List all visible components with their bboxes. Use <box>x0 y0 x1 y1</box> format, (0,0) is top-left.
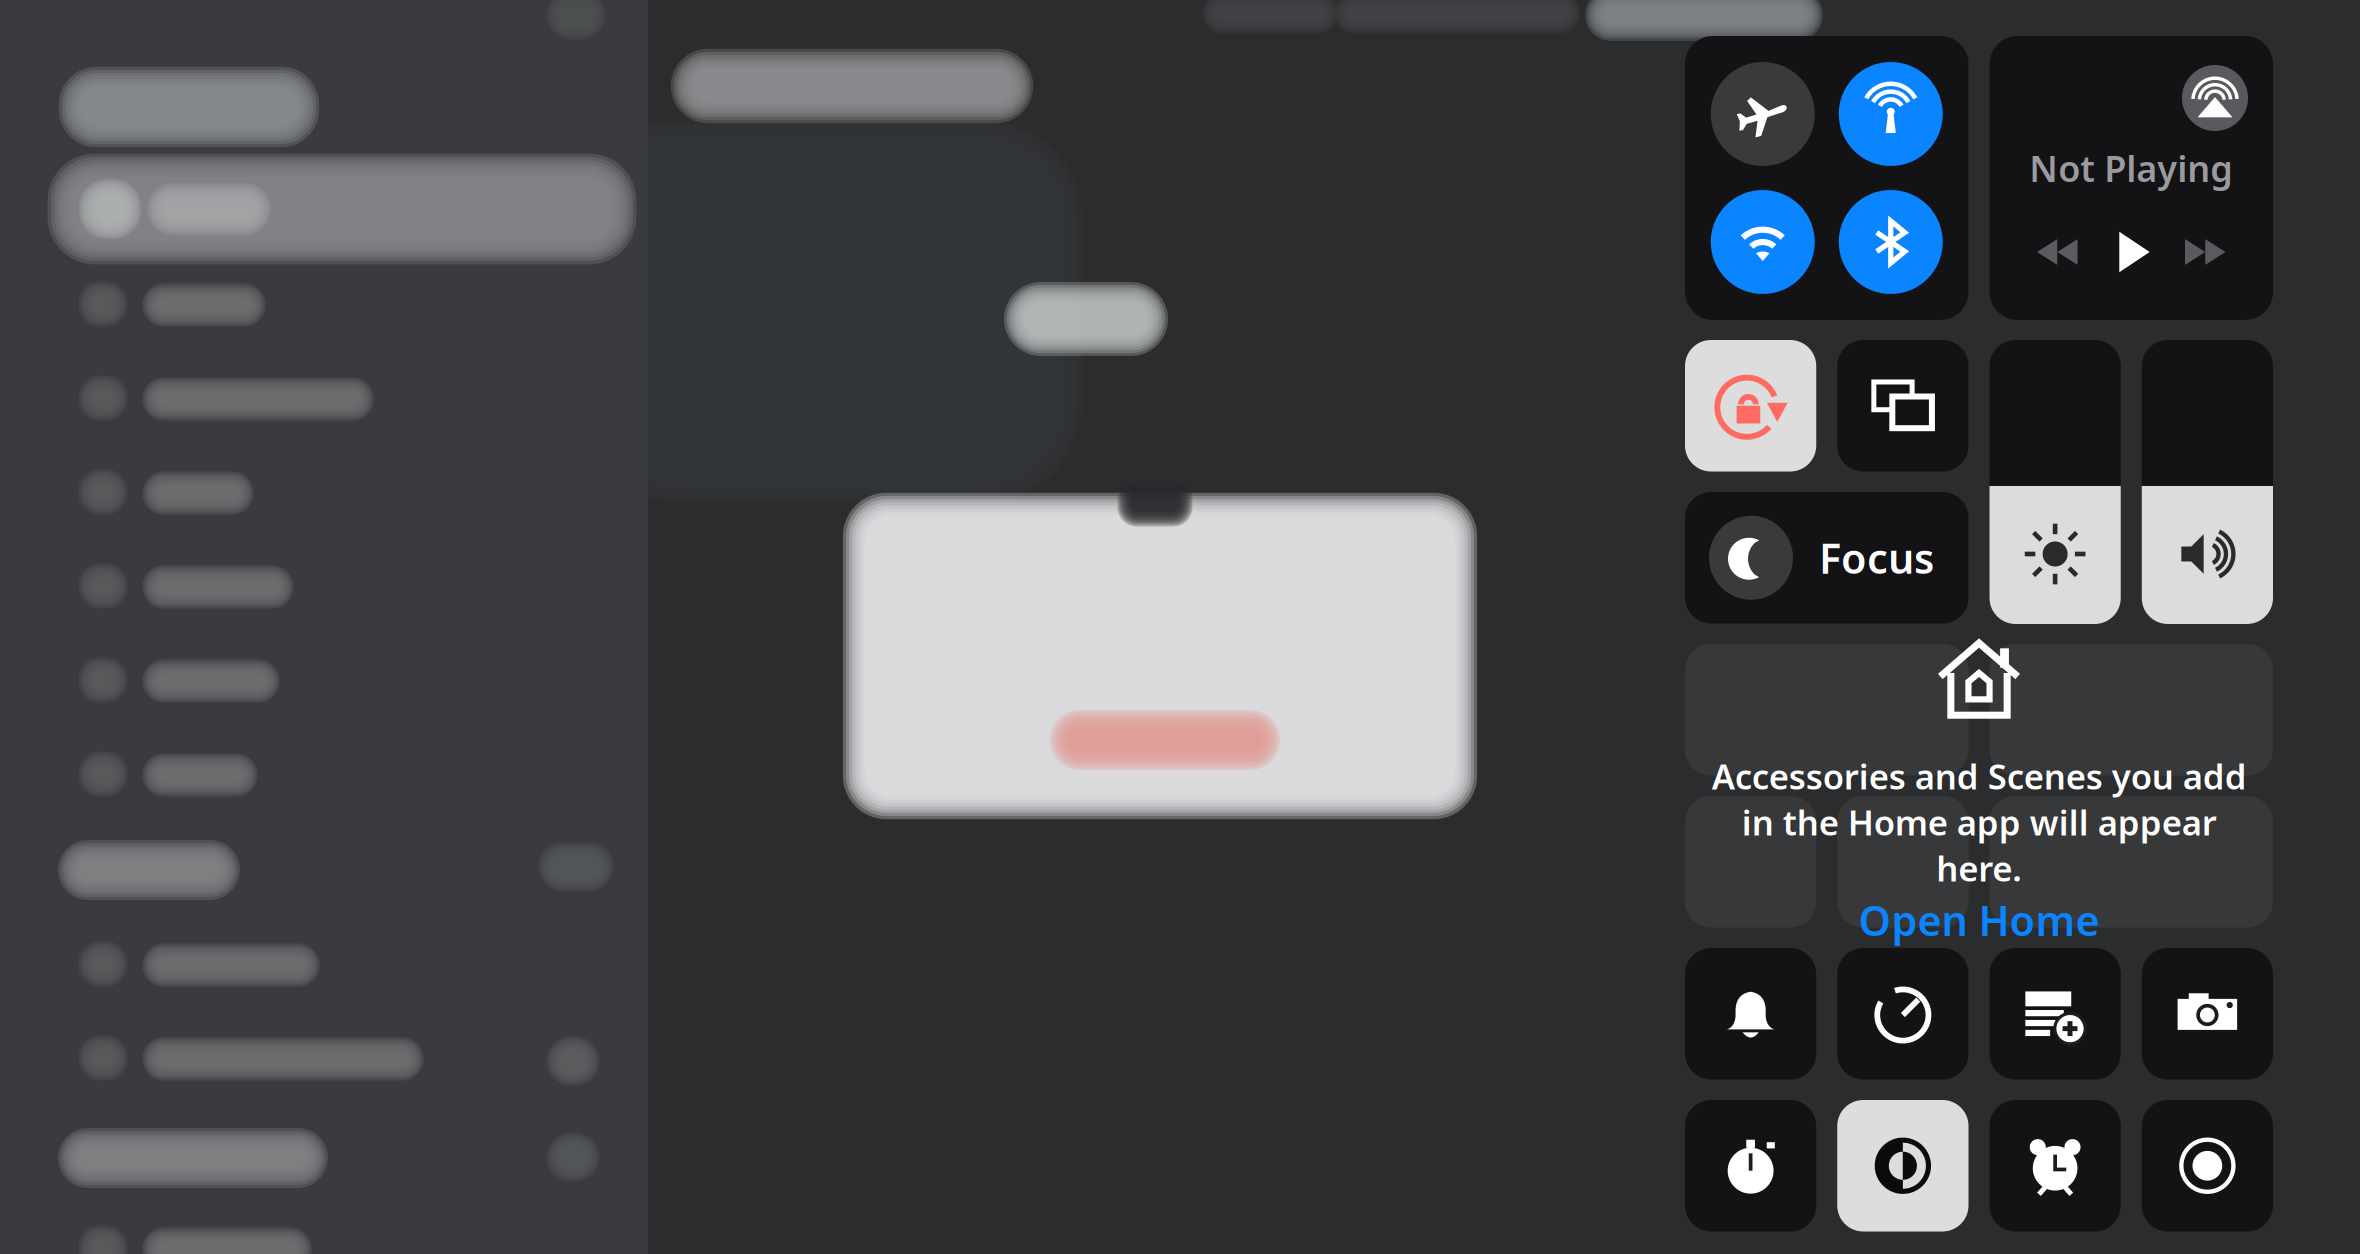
button[interactable]: Camera <box>2142 948 2273 1079</box>
button[interactable]: AirPlay <box>2182 65 2248 131</box>
button[interactable]: Screen Mirroring <box>1837 340 1968 471</box>
button[interactable]: Play <box>2107 228 2155 276</box>
button[interactable]: Stopwatch <box>1685 1100 1816 1231</box>
button[interactable]: Flashlight <box>1685 948 1816 1079</box>
button[interactable]: Cellular Data <box>1839 62 1943 166</box>
button[interactable]: Notes <box>1989 948 2121 1079</box>
button[interactable]: Volume <box>2142 340 2273 624</box>
button[interactable]: Screen Recording <box>2142 1100 2273 1231</box>
staticText: Accessories and Scenes you add in the Ho… <box>1711 753 2246 891</box>
button[interactable]: Open Home <box>1829 898 2129 942</box>
button[interactable]: Next <box>2181 228 2229 276</box>
button[interactable]: Airplane Mode <box>1711 62 1815 166</box>
button[interactable]: Wi-Fi <box>1711 190 1815 294</box>
staticText: Open Home <box>1858 893 2099 947</box>
staticText: Not Playing <box>2029 144 2233 192</box>
button[interactable]: Previous <box>2033 228 2081 276</box>
button[interactable]: Dark Mode <box>1837 1100 1968 1231</box>
button[interactable]: Focus <box>1685 492 1968 623</box>
button[interactable]: Alarm <box>1989 1100 2121 1231</box>
button[interactable]: Rotation Lock <box>1685 340 1816 471</box>
button[interactable]: Bluetooth <box>1839 190 1943 294</box>
staticText: Focus <box>1819 530 1934 585</box>
button[interactable]: Timer <box>1837 948 1968 1079</box>
button[interactable]: Brightness <box>1989 340 2121 624</box>
